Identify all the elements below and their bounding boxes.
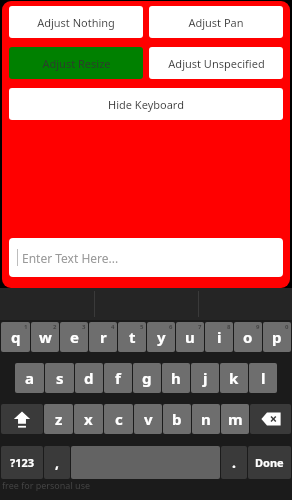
button[interactable]: Adjust Unspecified bbox=[149, 47, 283, 79]
button[interactable]: s bbox=[45, 363, 74, 393]
button[interactable]: Hide Keyboard bbox=[9, 88, 283, 120]
staticText: 8 bbox=[227, 323, 231, 331]
button[interactable]: Adjust Nothing bbox=[9, 6, 143, 38]
staticText: free for personal use bbox=[2, 479, 91, 491]
button[interactable]: ?123 bbox=[1, 446, 43, 479]
staticText: Adjust Nothing bbox=[37, 15, 115, 30]
button[interactable]: a bbox=[15, 363, 44, 393]
staticText: g bbox=[142, 368, 152, 388]
staticText: ?123 bbox=[10, 455, 35, 470]
button[interactable]: m bbox=[221, 404, 249, 434]
staticText: f bbox=[115, 368, 121, 388]
staticText: 0 bbox=[285, 323, 289, 331]
staticText: 5 bbox=[140, 323, 144, 331]
button[interactable]: Adjust Resize bbox=[9, 47, 143, 79]
staticText: y bbox=[157, 327, 166, 347]
staticText: v bbox=[144, 409, 153, 429]
staticText: Hide Keyboard bbox=[108, 97, 184, 112]
staticText: a bbox=[25, 368, 34, 388]
staticText: , bbox=[55, 453, 59, 472]
staticText: s bbox=[56, 368, 64, 388]
button[interactable]: n bbox=[192, 404, 220, 434]
staticText: c bbox=[115, 409, 123, 429]
staticText: p bbox=[272, 327, 282, 347]
staticText: h bbox=[171, 368, 181, 388]
button[interactable]: Adjust Pan bbox=[149, 6, 283, 38]
staticText: b bbox=[172, 409, 182, 429]
button[interactable]: j bbox=[191, 363, 219, 393]
button[interactable]: . bbox=[221, 446, 247, 479]
staticText: Adjust Unspecified bbox=[168, 56, 265, 71]
staticText: m bbox=[228, 409, 243, 429]
button[interactable]: t bbox=[118, 322, 146, 352]
button[interactable]: r bbox=[89, 322, 117, 352]
button[interactable]: Enter Text Here... bbox=[9, 238, 283, 277]
staticText: 1 bbox=[24, 323, 28, 331]
staticText: 4 bbox=[111, 323, 115, 331]
staticText: Enter Text Here... bbox=[22, 250, 119, 266]
button[interactable]: h bbox=[162, 363, 190, 393]
button[interactable]: y bbox=[147, 322, 175, 352]
staticText: Adjust Resize bbox=[42, 56, 111, 71]
staticText: Adjust Pan bbox=[188, 15, 244, 30]
staticText: n bbox=[201, 409, 211, 429]
staticText: t bbox=[129, 327, 136, 347]
staticText: 2 bbox=[53, 323, 57, 331]
staticText: z bbox=[55, 409, 63, 429]
button[interactable]: l bbox=[249, 363, 277, 393]
staticText: x bbox=[84, 409, 93, 429]
button[interactable]: x bbox=[74, 404, 103, 434]
button[interactable]: o bbox=[234, 322, 262, 352]
button[interactable]: b bbox=[163, 404, 191, 434]
staticText: r bbox=[100, 327, 107, 347]
button[interactable]: c bbox=[104, 404, 133, 434]
staticText: o bbox=[243, 327, 253, 347]
button[interactable]: q bbox=[1, 322, 30, 352]
button[interactable]: k bbox=[220, 363, 248, 393]
staticText: . bbox=[232, 453, 236, 472]
staticText: e bbox=[70, 327, 79, 347]
button[interactable]: g bbox=[133, 363, 161, 393]
button[interactable]: z bbox=[44, 404, 73, 434]
button[interactable]: , bbox=[44, 446, 70, 479]
button[interactable]: Done bbox=[248, 446, 291, 479]
button[interactable]: e bbox=[60, 322, 88, 352]
staticText: 6 bbox=[169, 323, 173, 331]
button[interactable]: i bbox=[205, 322, 233, 352]
staticText: w bbox=[39, 327, 52, 347]
button[interactable]: d bbox=[75, 363, 103, 393]
button[interactable]: v bbox=[134, 404, 162, 434]
staticText: d bbox=[84, 368, 94, 388]
button[interactable]: w bbox=[31, 322, 59, 352]
staticText: Done bbox=[255, 455, 284, 470]
button[interactable]: p bbox=[263, 322, 291, 352]
staticText: 9 bbox=[256, 323, 260, 331]
staticText: 3 bbox=[82, 323, 86, 331]
staticText: i bbox=[217, 327, 222, 347]
staticText: q bbox=[11, 327, 21, 347]
staticText: l bbox=[261, 368, 266, 388]
button[interactable]: Shift bbox=[1, 404, 43, 434]
button[interactable]: f bbox=[104, 363, 132, 393]
button[interactable]: Backspace bbox=[250, 404, 291, 434]
button[interactable]: u bbox=[176, 322, 204, 352]
staticText: j bbox=[203, 368, 208, 388]
staticText: 7 bbox=[198, 323, 202, 331]
staticText: u bbox=[185, 327, 195, 347]
staticText: k bbox=[229, 368, 239, 388]
